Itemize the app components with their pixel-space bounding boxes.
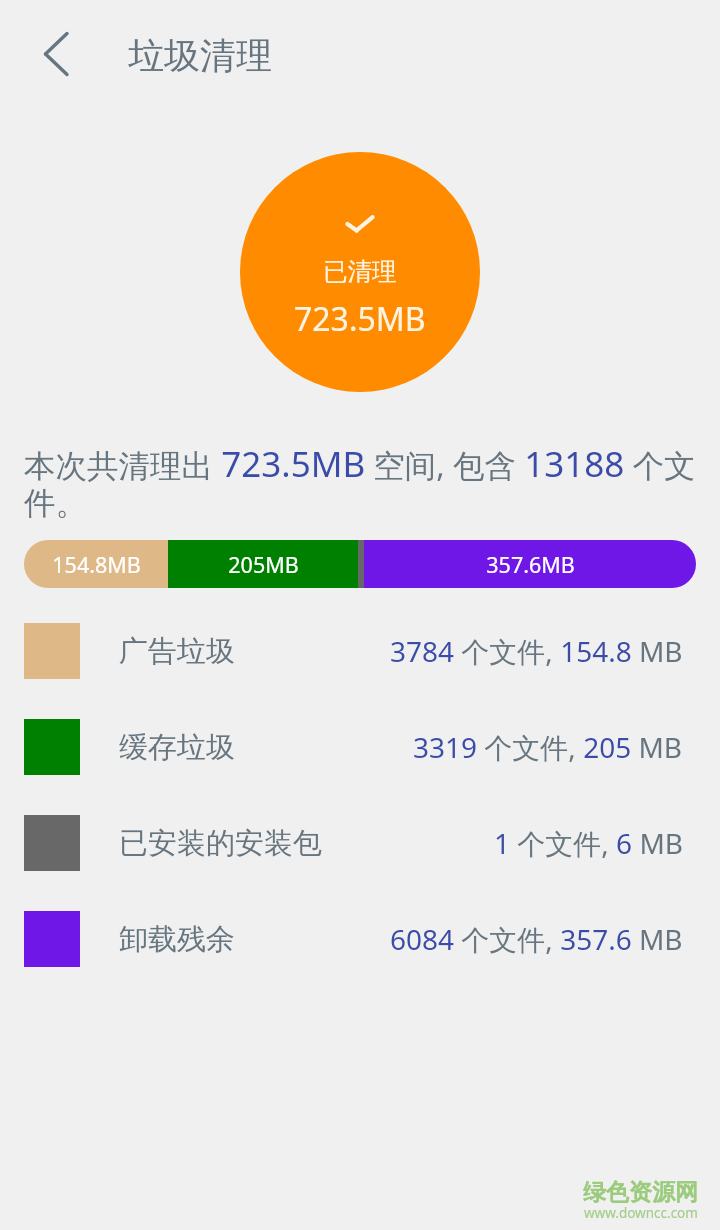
- staticText: 154.8MB: [52, 550, 141, 579]
- staticText: 绿色资源网: [583, 1178, 698, 1207]
- staticText: 723.5MB: [294, 297, 426, 341]
- staticText: 卸载残余: [119, 921, 235, 958]
- staticText: 本次共清理出 723.5MB 空间, 包含 13188 个文件。: [24, 440, 696, 524]
- button[interactable]: 广告垃圾: [0, 603, 720, 699]
- staticText: 6084 个文件, 357.6 MB: [390, 920, 683, 958]
- staticText: 垃圾清理: [128, 33, 272, 78]
- button[interactable]: 卸载残余: [0, 891, 720, 987]
- button[interactable]: 缓存垃圾: [0, 699, 720, 795]
- staticText: 广告垃圾: [119, 633, 235, 670]
- staticText: www.downcc.com: [584, 1204, 698, 1222]
- staticText: 缓存垃圾: [119, 729, 235, 766]
- staticText: 3784 个文件, 154.8 MB: [390, 632, 683, 670]
- staticText: 205MB: [228, 550, 299, 579]
- button[interactable]: 已安装的安装包: [0, 795, 720, 891]
- staticText: 1 个文件, 6 MB: [494, 824, 683, 862]
- staticText: 已安装的安装包: [119, 825, 322, 862]
- staticText: 已清理: [323, 256, 397, 287]
- staticText: 357.6MB: [486, 550, 575, 579]
- button[interactable]: Back: [20, 18, 92, 90]
- staticText: 3319 个文件, 205 MB: [413, 728, 683, 766]
